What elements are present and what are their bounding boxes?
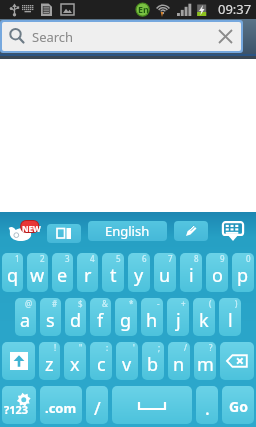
staticText: .com: [45, 399, 77, 417]
staticText: #: [52, 298, 58, 309]
button[interactable]: b: [142, 342, 164, 380]
button[interactable]: Hide keyboard: [219, 220, 247, 242]
staticText: m: [197, 352, 214, 377]
staticText: t: [110, 263, 117, 288]
button[interactable]: q: [2, 253, 23, 292]
staticText: 2: [40, 253, 45, 264]
staticText: 8: [194, 253, 199, 264]
staticText: 6: [142, 253, 147, 264]
button[interactable]: English: [88, 221, 167, 241]
staticText: 4: [90, 253, 95, 264]
staticText: p: [237, 263, 249, 288]
staticText: a: [20, 308, 31, 333]
staticText: n: [173, 352, 185, 377]
staticText: 5: [116, 253, 121, 264]
staticText: 0: [246, 253, 251, 264]
staticText: En: [138, 3, 149, 15]
staticText: h: [146, 308, 158, 333]
button[interactable]: d: [65, 298, 86, 336]
staticText: x: [70, 352, 80, 377]
staticText: 9: [220, 253, 225, 264]
button[interactable]: [220, 342, 254, 380]
staticText: y: [134, 263, 144, 288]
button[interactable]: a: [15, 298, 36, 336]
button[interactable]: [2, 342, 35, 380]
button[interactable]: Go: [222, 386, 254, 424]
staticText: ?: [209, 342, 213, 353]
button[interactable]: Search: [2, 22, 241, 51]
button[interactable]: u: [154, 253, 176, 292]
staticText: ?123: [4, 402, 29, 417]
staticText: ): [235, 298, 238, 309]
button[interactable]: /: [86, 386, 108, 424]
staticText: Go: [229, 397, 248, 416]
button[interactable]: c: [90, 342, 112, 380]
button[interactable]: y: [128, 253, 150, 292]
button[interactable]: [112, 386, 192, 424]
staticText: r: [84, 263, 92, 288]
button[interactable]: e: [52, 253, 73, 292]
staticText: z: [45, 352, 54, 377]
staticText: 3: [65, 253, 70, 264]
staticText: q: [7, 263, 19, 288]
staticText: o: [212, 263, 223, 288]
staticText: i: [189, 263, 194, 288]
staticText: English: [105, 222, 150, 240]
button[interactable]: x: [64, 342, 86, 380]
button[interactable]: v: [116, 342, 138, 380]
button[interactable]: i: [180, 253, 202, 292]
button[interactable]: t: [102, 253, 124, 292]
button[interactable]: w: [27, 253, 48, 292]
button[interactable]: ?123: [2, 386, 36, 424]
staticText: 7: [168, 253, 173, 264]
staticText: s: [46, 308, 55, 333]
staticText: /: [184, 342, 187, 353]
staticText: j: [176, 308, 181, 333]
button[interactable]: o: [206, 253, 228, 292]
staticText: c: [97, 352, 106, 377]
button[interactable]: p: [232, 253, 254, 292]
staticText: ': [133, 342, 135, 353]
button[interactable]: g: [115, 298, 137, 336]
staticText: !: [54, 342, 57, 353]
staticText: g: [120, 308, 132, 333]
button[interactable]: New emoji: [8, 218, 40, 244]
staticText: v: [122, 352, 132, 377]
staticText: NEW: [22, 223, 41, 234]
staticText: -: [157, 298, 160, 309]
button[interactable]: .com: [40, 386, 82, 424]
button[interactable]: l: [219, 298, 241, 336]
button[interactable]: s: [40, 298, 61, 336]
staticText: /: [94, 396, 101, 421]
staticText: l: [228, 308, 233, 333]
staticText: u: [159, 263, 171, 288]
staticText: .: [205, 396, 210, 421]
staticText: @: [25, 298, 33, 309]
button[interactable]: z: [39, 342, 60, 380]
button[interactable]: Input mode: [47, 224, 81, 243]
staticText: +: [181, 298, 186, 309]
button[interactable]: Handwriting: [174, 221, 208, 241]
staticText: *: [129, 298, 134, 309]
button[interactable]: k: [193, 298, 215, 336]
staticText: w: [30, 263, 45, 288]
button[interactable]: f: [90, 298, 111, 336]
staticText: b: [147, 352, 159, 377]
button[interactable]: m: [194, 342, 216, 380]
button[interactable]: n: [168, 342, 190, 380]
button[interactable]: h: [141, 298, 163, 336]
staticText: $: [78, 298, 83, 309]
button[interactable]: .: [196, 386, 218, 424]
button[interactable]: Clear search: [210, 22, 241, 51]
staticText: f: [97, 308, 104, 333]
staticText: :: [106, 342, 109, 353]
staticText: ;: [158, 342, 161, 353]
staticText: (: [209, 298, 212, 309]
staticText: e: [57, 263, 68, 288]
staticText: ": [79, 342, 83, 353]
button[interactable]: r: [77, 253, 98, 292]
staticText: d: [70, 308, 82, 333]
staticText: &: [102, 298, 108, 309]
staticText: k: [199, 308, 209, 333]
button[interactable]: j: [167, 298, 189, 336]
